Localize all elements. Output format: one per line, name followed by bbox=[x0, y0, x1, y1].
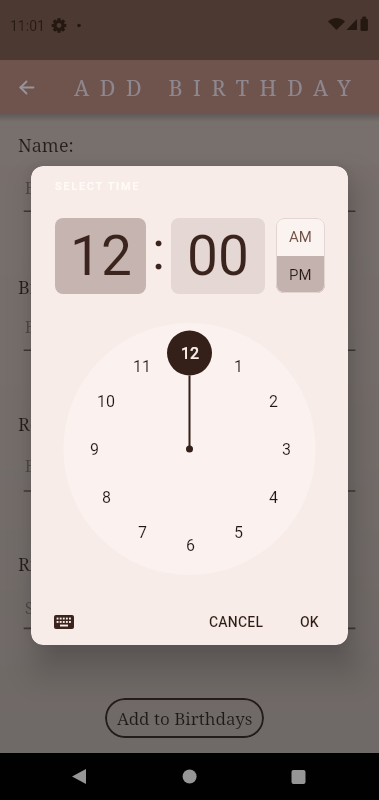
staticText: ADD BIRTHDAY bbox=[74, 73, 362, 102]
staticText: Enter reminder bbox=[25, 455, 141, 475]
staticText: 12 bbox=[181, 344, 200, 363]
staticText: Name: bbox=[18, 133, 74, 155]
staticText: AM bbox=[289, 228, 312, 246]
staticText: 11 bbox=[133, 357, 151, 376]
staticText: 00 bbox=[187, 224, 249, 288]
staticText: 8 bbox=[102, 488, 111, 507]
staticText: Reminder: bbox=[18, 412, 109, 434]
button[interactable]: AM bbox=[276, 218, 325, 256]
staticText: Select ringtone bbox=[25, 597, 136, 617]
staticText: 7 bbox=[138, 523, 147, 542]
button[interactable] bbox=[270, 753, 326, 800]
staticText: Birthday: bbox=[18, 275, 98, 297]
staticText: Enter name bbox=[25, 177, 112, 197]
button[interactable] bbox=[44, 602, 84, 642]
staticText: 11:01 bbox=[10, 18, 45, 34]
staticText: 4 bbox=[269, 488, 278, 507]
staticText: 12 bbox=[70, 224, 132, 288]
staticText: PM bbox=[289, 266, 312, 284]
staticText: Add to Birthdays bbox=[117, 707, 253, 730]
button[interactable]: 00 bbox=[171, 218, 265, 294]
button[interactable] bbox=[161, 753, 217, 800]
button[interactable]: 12 bbox=[55, 218, 146, 294]
button[interactable] bbox=[51, 753, 107, 800]
staticText: 9 bbox=[90, 440, 99, 459]
button[interactable]: PM bbox=[276, 256, 325, 293]
staticText: 5 bbox=[234, 523, 243, 542]
button[interactable]: CANCEL bbox=[206, 606, 266, 638]
button[interactable]: OK bbox=[286, 606, 332, 638]
staticText: Enter birthday bbox=[25, 316, 134, 336]
staticText: CANCEL bbox=[209, 614, 264, 630]
staticText: 3 bbox=[282, 440, 291, 459]
staticText: 2 bbox=[269, 392, 278, 411]
staticText: SELECT TIME bbox=[55, 180, 141, 193]
staticText: OK bbox=[300, 614, 319, 630]
staticText: : bbox=[152, 219, 166, 282]
button[interactable] bbox=[9, 69, 45, 105]
staticText: 1 bbox=[234, 357, 243, 376]
button[interactable]: Add to Birthdays bbox=[105, 698, 264, 738]
staticText: 10 bbox=[97, 392, 115, 411]
staticText: 6 bbox=[186, 536, 195, 555]
staticText: Ringtone: bbox=[18, 552, 100, 574]
